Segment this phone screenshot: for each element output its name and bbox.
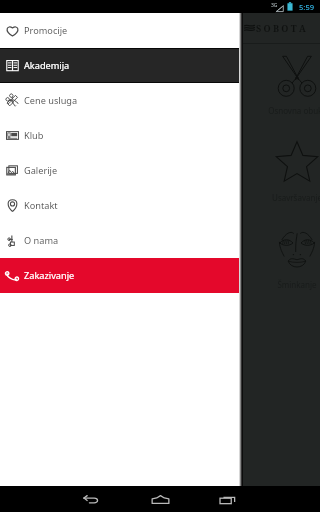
button[interactable]: Osnovna obuka — [241, 44, 320, 131]
staticText: Galerije — [24, 164, 58, 177]
button[interactable]: Šminkanje — [241, 218, 320, 305]
button[interactable]: Cene usluga — [0, 83, 240, 118]
staticText: Zakazivanje — [24, 269, 75, 282]
staticText: 5:59 — [299, 2, 315, 12]
staticText: Klub — [24, 129, 44, 142]
button[interactable]: Back — [74, 486, 108, 512]
button[interactable]: Galerije — [0, 153, 240, 188]
button[interactable]: Klub — [0, 118, 240, 153]
button[interactable]: Home — [143, 486, 177, 512]
staticText: 3G — [271, 2, 278, 9]
staticText: Akademija — [24, 59, 70, 72]
button[interactable]: Recent apps — [210, 486, 244, 512]
button[interactable]: Zakazivanje — [0, 258, 240, 293]
button[interactable]: Kontakt — [0, 188, 240, 223]
staticText: Promocije — [24, 24, 68, 37]
staticText: O nama — [24, 234, 59, 247]
button[interactable]: Akademija — [0, 48, 240, 83]
staticText: Cene usluga — [24, 94, 78, 107]
button[interactable]: Usavršavanje — [241, 131, 320, 218]
staticText: S O B O T A — [256, 22, 306, 34]
staticText: Kontakt — [24, 199, 58, 212]
button[interactable]: O nama — [0, 223, 240, 258]
button[interactable]: Promocije — [0, 13, 240, 48]
